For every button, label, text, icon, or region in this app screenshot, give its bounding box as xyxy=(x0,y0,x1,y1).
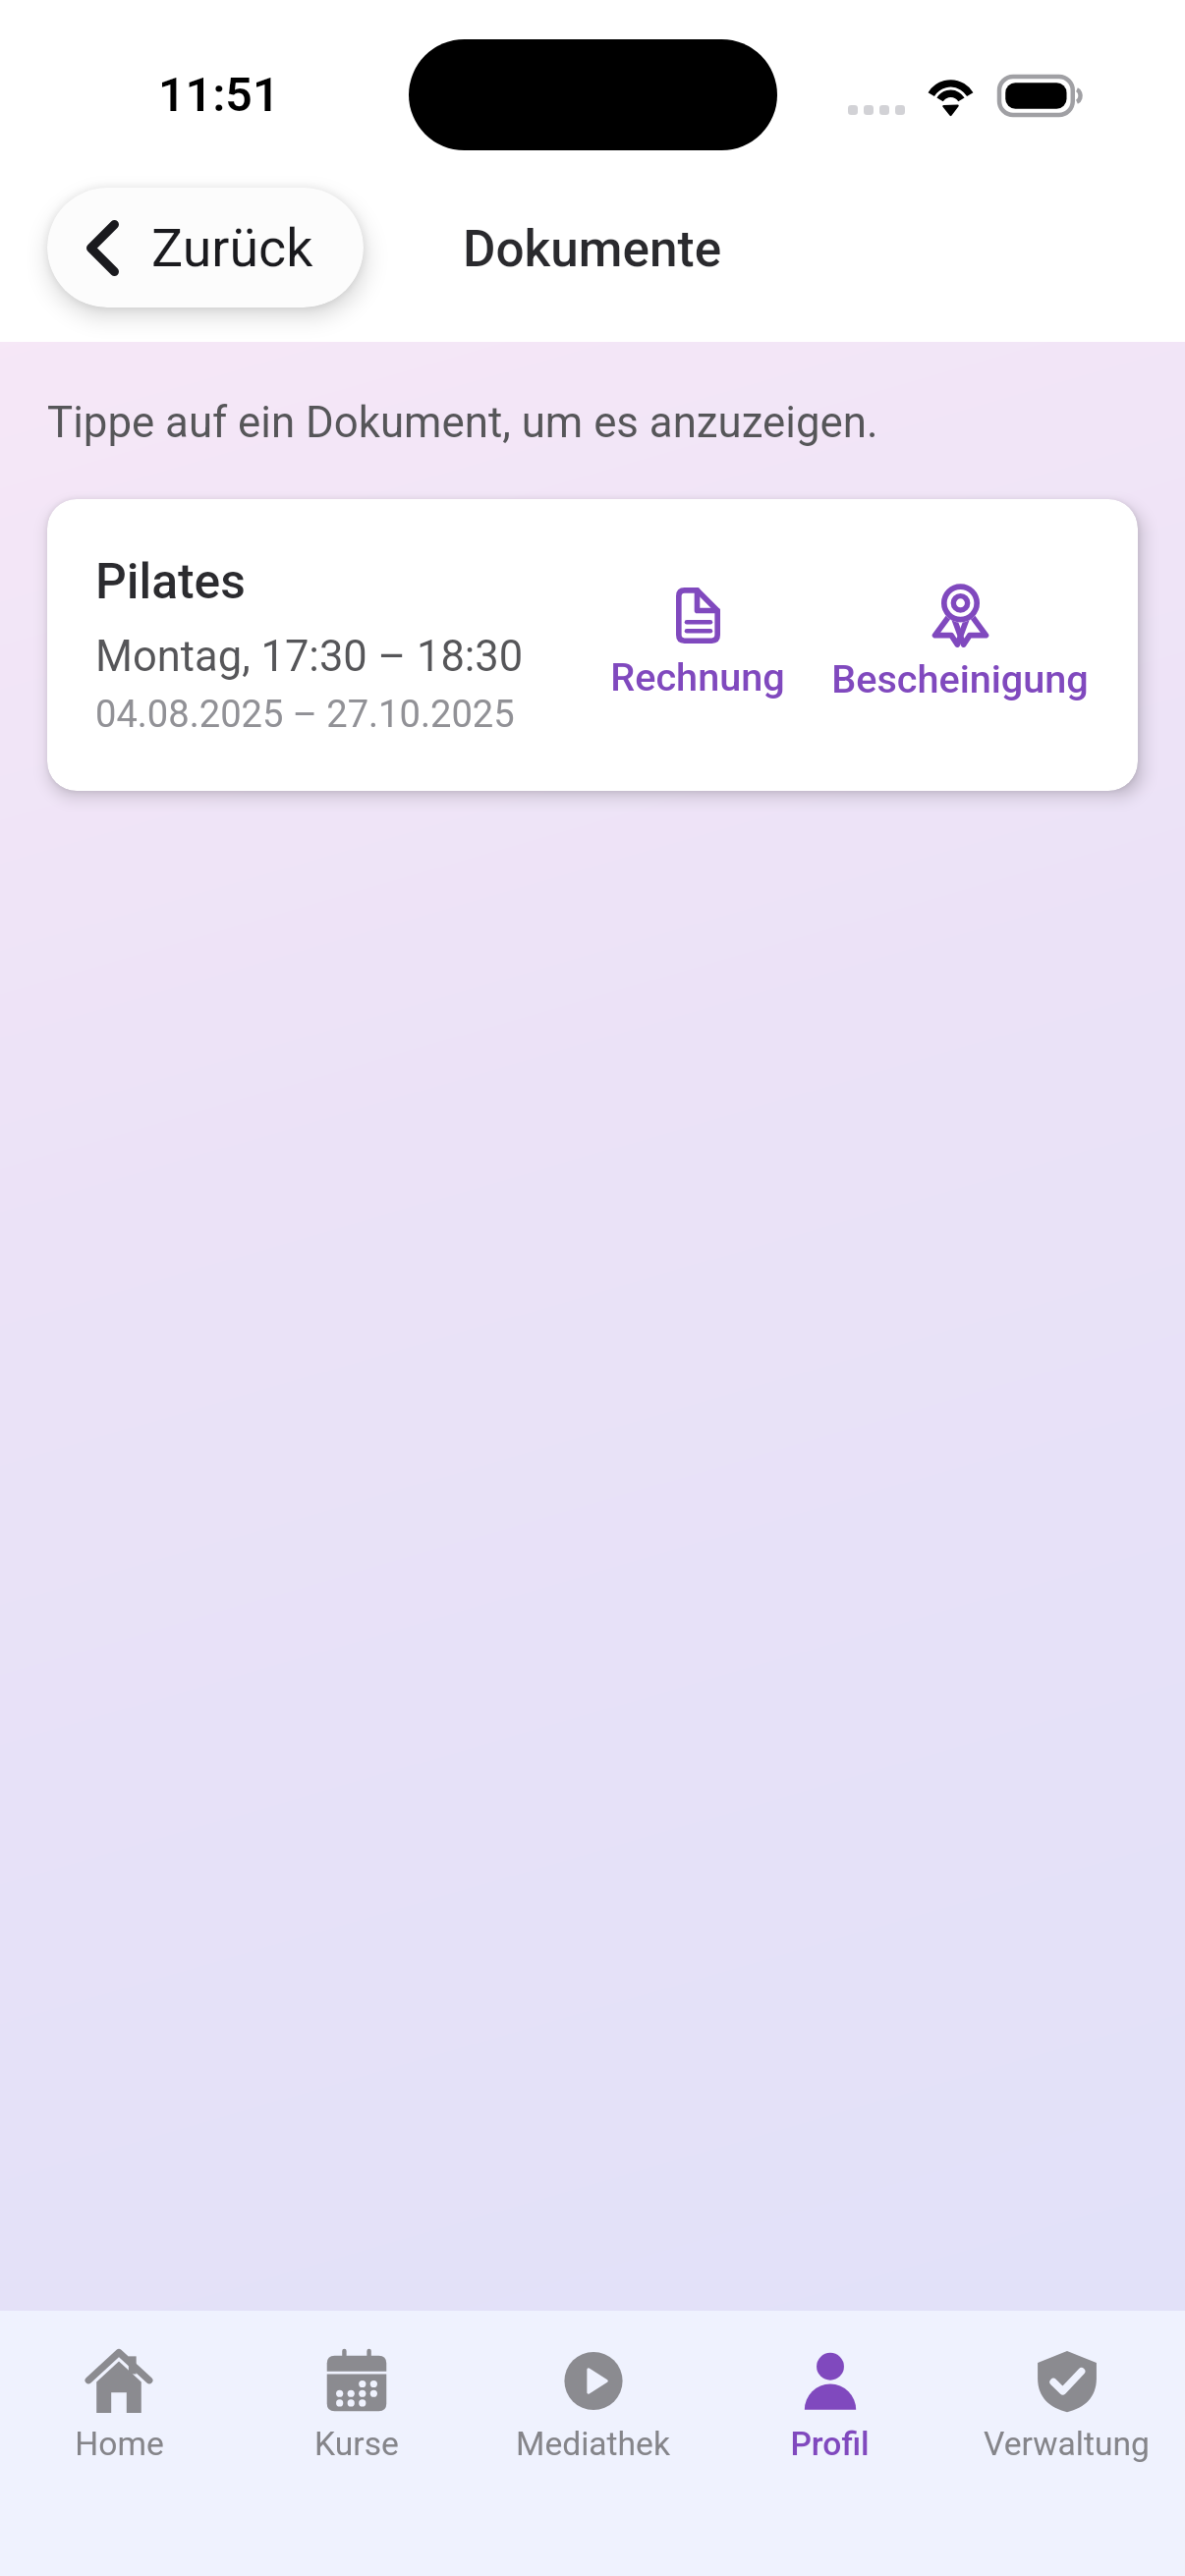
staticText: Verwaltung xyxy=(984,2425,1150,2463)
staticText: Montag, 17:30 – 18:30 xyxy=(95,632,524,682)
button[interactable]: Bescheinigung xyxy=(827,584,1093,701)
button[interactable]: Verwaltung xyxy=(948,2311,1185,2463)
staticText: Dokumente xyxy=(463,219,722,278)
button[interactable]: Profil xyxy=(711,2311,948,2463)
staticText: Pilates xyxy=(95,553,246,610)
button[interactable]: Pilates xyxy=(47,499,1138,791)
staticText: 11:51 xyxy=(158,67,280,123)
button[interactable]: Mediathek xyxy=(475,2311,711,2463)
staticText: Kurse xyxy=(314,2425,399,2463)
staticText: Mediathek xyxy=(516,2425,670,2463)
staticText: Rechnung xyxy=(610,654,785,700)
button[interactable]: Rechnung xyxy=(565,588,830,700)
staticText: Bescheinigung xyxy=(831,656,1089,701)
staticText: Zurück xyxy=(151,217,313,279)
button[interactable]: Zurück xyxy=(47,188,364,308)
staticText: Home xyxy=(75,2425,164,2463)
staticText: Tippe auf ein Dokument, um es anzuzeigen… xyxy=(47,397,878,447)
staticText: Profil xyxy=(790,2425,870,2463)
staticText: 04.08.2025 – 27.10.2025 xyxy=(95,693,515,737)
button[interactable]: Home xyxy=(0,2311,238,2463)
button[interactable]: Kurse xyxy=(238,2311,475,2463)
